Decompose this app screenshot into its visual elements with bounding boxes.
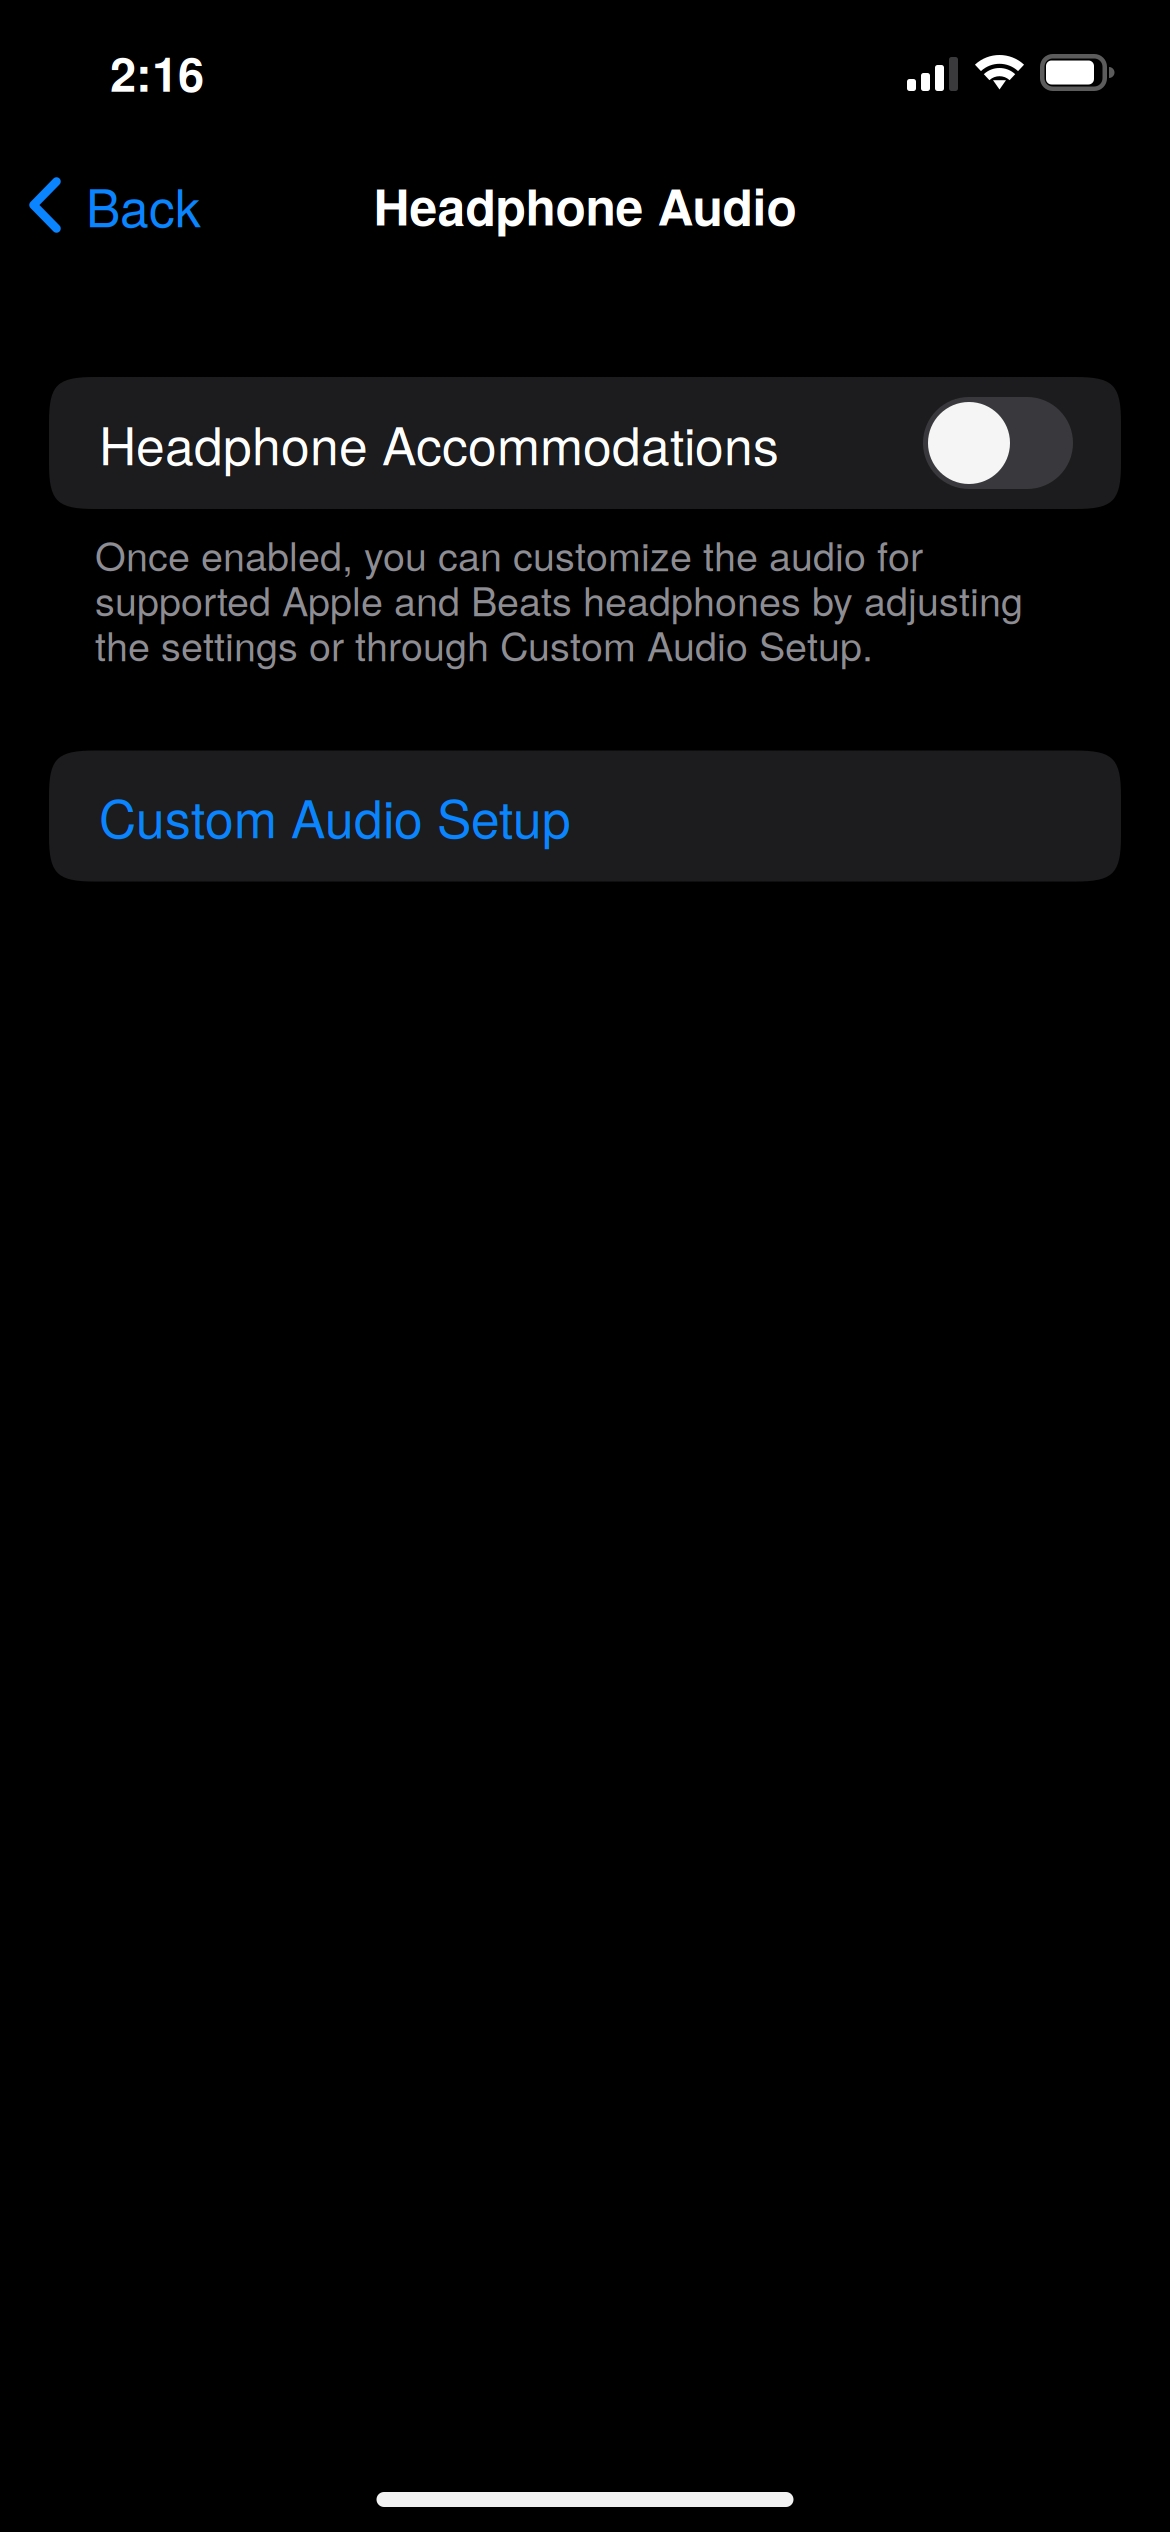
button[interactable]: Headphone Accommodations <box>49 377 1121 509</box>
staticText: Back <box>86 168 201 242</box>
staticText: Headphone Audio <box>373 169 796 241</box>
staticText: Custom Audio Setup <box>99 779 571 853</box>
staticText: 2:16 <box>110 39 204 106</box>
staticText: Once enabled, you can customize the audi… <box>95 526 1023 672</box>
button[interactable]: Back <box>0 139 227 271</box>
button[interactable]: Custom Audio Setup <box>49 750 1121 881</box>
staticText: Headphone Accommodations <box>99 406 779 480</box>
